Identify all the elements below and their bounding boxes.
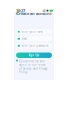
staticText: ıll	[42, 8, 45, 13]
staticText: Sign Up	[28, 53, 39, 57]
staticText: Enter your password	[22, 44, 49, 47]
staticText: 10:27	[16, 8, 25, 13]
button[interactable]: Sign Up	[14, 52, 54, 58]
staticText: By signing up you agree to our Terms	[19, 59, 45, 67]
button[interactable]: Agree to terms	[16, 59, 18, 61]
staticText: Email	[22, 37, 28, 40]
staticText: Create an account	[16, 11, 52, 16]
button[interactable]: Back	[16, 11, 20, 16]
staticText: of Service and Privacy Policy	[19, 67, 47, 74]
staticText: Enter your name	[22, 30, 44, 33]
